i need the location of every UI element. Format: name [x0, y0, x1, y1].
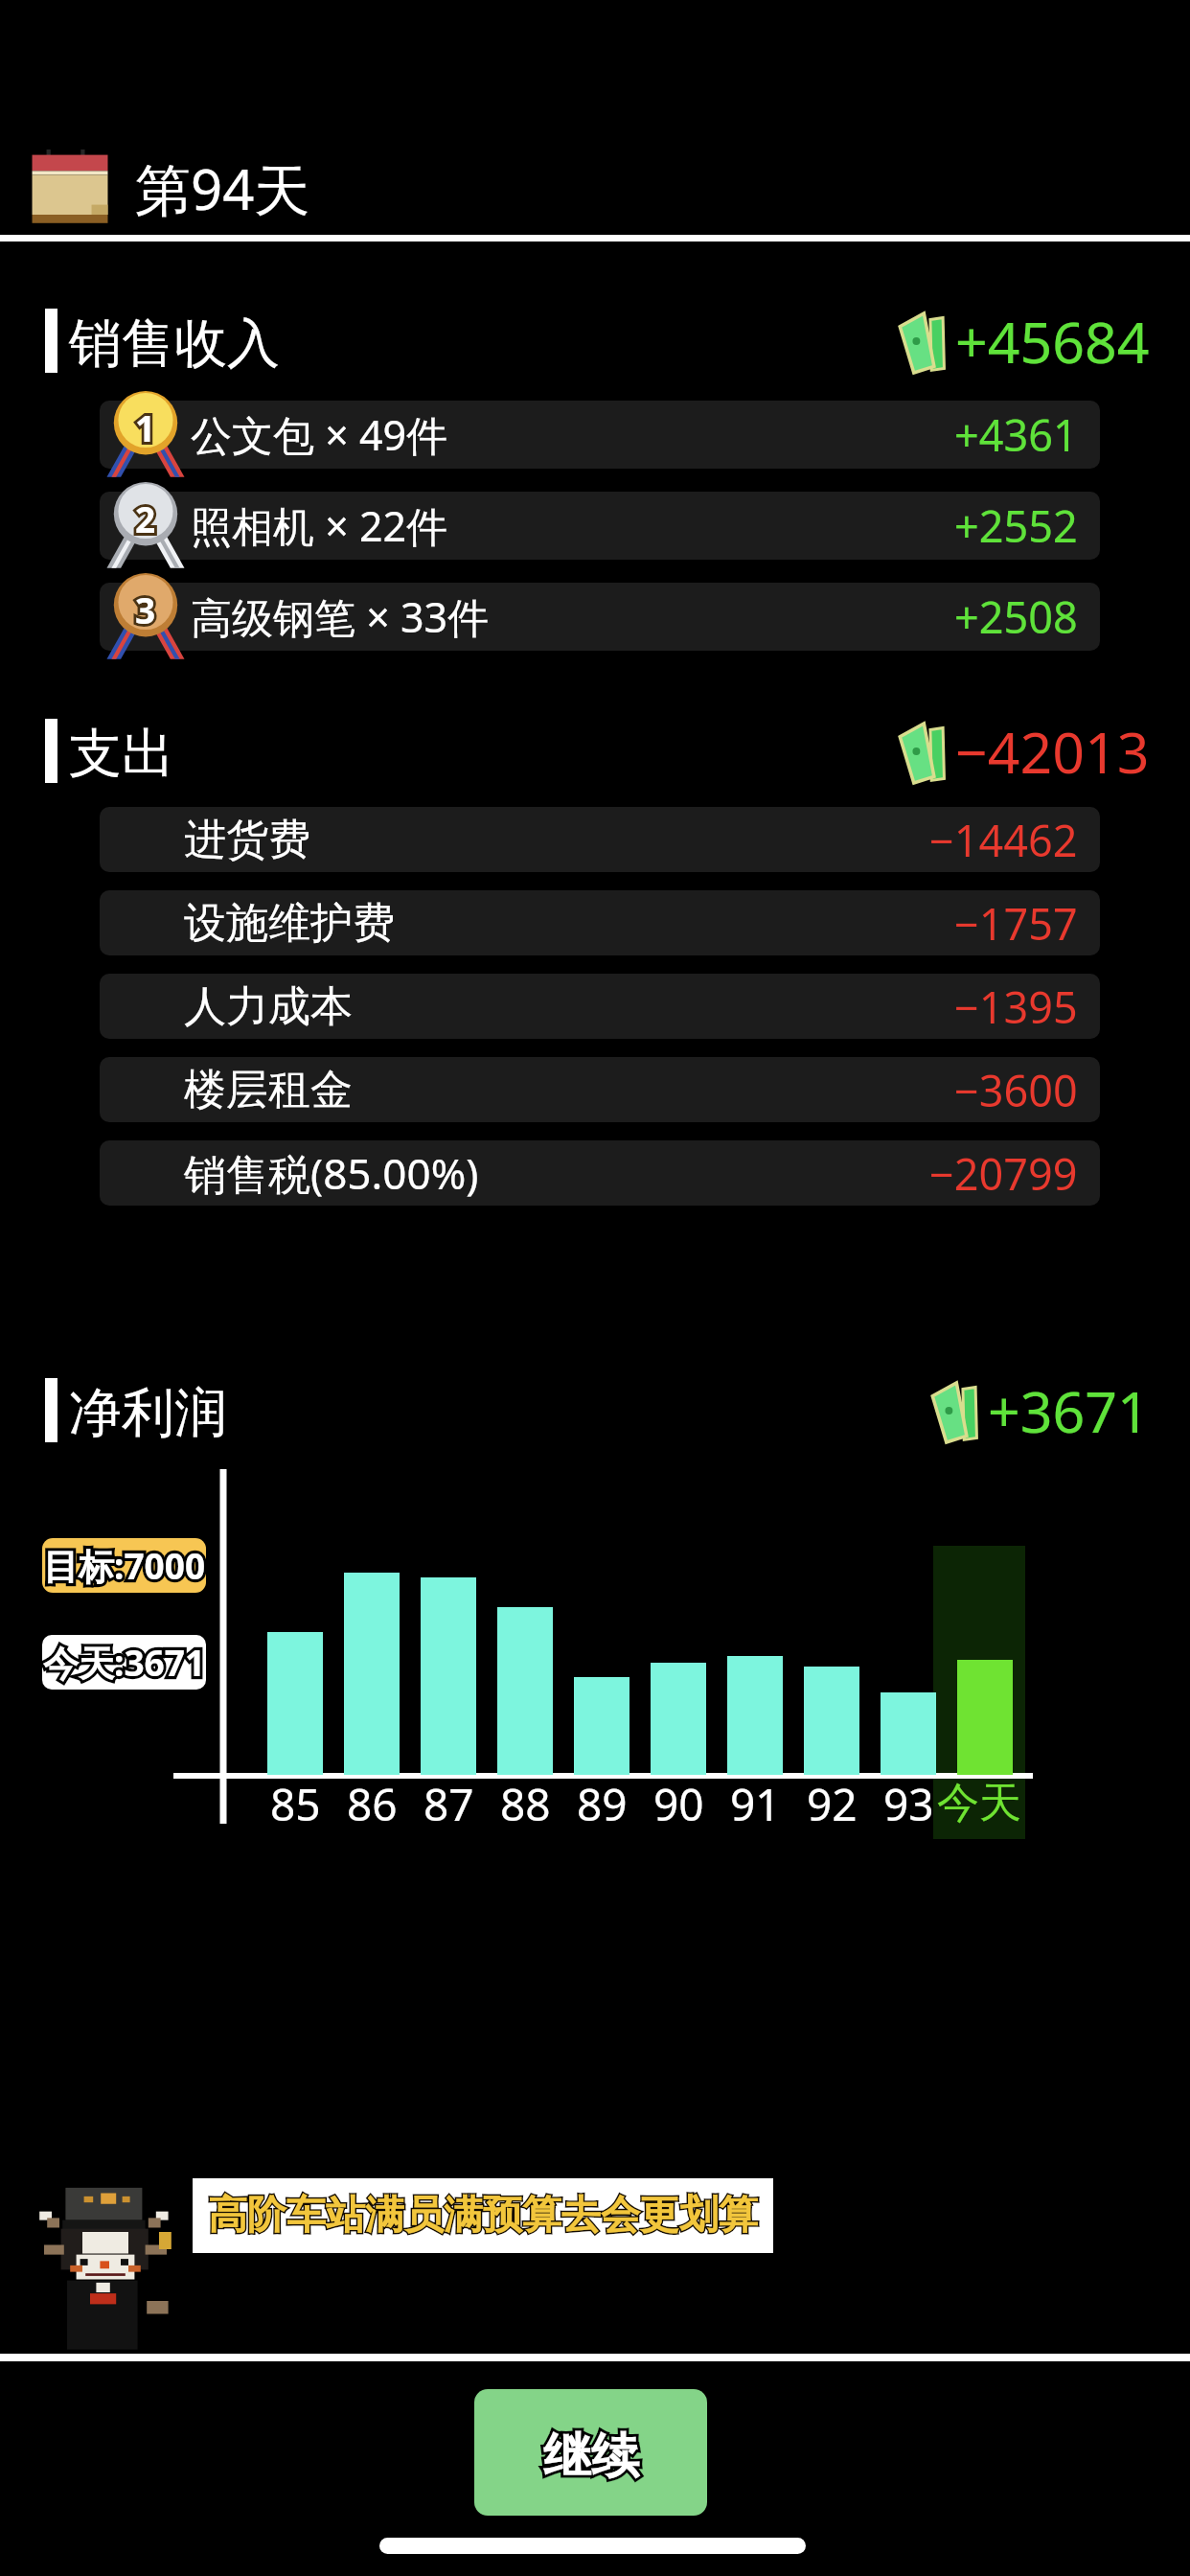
- staticText: 继续: [543, 2426, 639, 2487]
- staticText: 楼层租金: [184, 1064, 353, 1116]
- button[interactable]: 高阶车站满员满预算去会更划算: [193, 2178, 773, 2253]
- staticText: 继续: [543, 2426, 639, 2487]
- staticText: +2508: [954, 587, 1078, 646]
- button[interactable]: 设施维护费: [100, 890, 1100, 955]
- staticText: 今天: [937, 1777, 1021, 1829]
- staticText: 今天:3671: [43, 1638, 206, 1687]
- staticText: 支出: [69, 721, 174, 787]
- staticText: 2: [135, 494, 156, 542]
- staticText: −42013: [955, 713, 1150, 790]
- staticText: +45684: [955, 303, 1150, 379]
- staticText: +3671: [988, 1372, 1150, 1449]
- staticText: 销售收入: [69, 310, 280, 377]
- staticText: 87: [423, 1774, 474, 1834]
- other: Money: [924, 1379, 987, 1442]
- staticText: 销售税(85.00%): [184, 1144, 479, 1202]
- button[interactable]: 公文包 × 49件: [100, 401, 1100, 469]
- button[interactable]: 销售税(85.00%): [100, 1140, 1100, 1206]
- other: Rank 3 medal: [107, 571, 184, 662]
- staticText: 设施维护费: [184, 897, 395, 950]
- other: Mascot: [29, 2137, 182, 2353]
- staticText: 高阶车站满员满预算去会更划算: [208, 2191, 758, 2241]
- staticText: 今天:3671: [43, 1638, 206, 1687]
- staticText: 88: [500, 1774, 551, 1834]
- other: Money: [891, 310, 954, 373]
- button[interactable]: 高级钢笔 × 33件: [100, 583, 1100, 651]
- other: Rank 1 medal: [107, 389, 184, 480]
- staticText: +4361: [954, 405, 1078, 464]
- staticText: 公文包 × 49件: [191, 406, 448, 463]
- staticText: 90: [653, 1774, 704, 1834]
- staticText: 人力成本: [184, 980, 353, 1033]
- button[interactable]: Calendar: [25, 149, 310, 227]
- staticText: −1757: [954, 894, 1078, 953]
- staticText: 高级钢笔 × 33件: [191, 588, 490, 645]
- other: Money: [891, 720, 954, 783]
- button[interactable]: 照相机 × 22件: [100, 492, 1100, 560]
- button[interactable]: 继续: [474, 2389, 707, 2516]
- staticText: −14462: [929, 811, 1078, 869]
- staticText: 3: [135, 586, 156, 633]
- staticText: 92: [807, 1774, 858, 1834]
- staticText: 85: [270, 1774, 321, 1834]
- staticText: 3: [135, 586, 156, 633]
- staticText: −1395: [954, 977, 1078, 1036]
- staticText: 第94天: [135, 150, 310, 226]
- staticText: +2552: [954, 496, 1078, 555]
- button[interactable]: 人力成本: [100, 974, 1100, 1039]
- staticText: 目标:7000: [43, 1541, 206, 1590]
- staticText: 2: [135, 494, 156, 542]
- staticText: 净利润: [69, 1380, 227, 1446]
- staticText: 目标:7000: [43, 1541, 206, 1590]
- staticText: 86: [347, 1774, 398, 1834]
- staticText: 93: [883, 1774, 934, 1834]
- staticText: 高阶车站满员满预算去会更划算: [208, 2191, 758, 2241]
- staticText: −3600: [954, 1061, 1078, 1119]
- other: Rank 2 medal: [107, 480, 184, 571]
- staticText: 进货费: [184, 814, 310, 866]
- button[interactable]: 楼层租金: [100, 1057, 1100, 1122]
- other: Calendar: [25, 149, 115, 226]
- staticText: −20799: [929, 1144, 1078, 1203]
- staticText: 照相机 × 22件: [191, 497, 448, 554]
- staticText: 89: [577, 1774, 628, 1834]
- staticText: 91: [730, 1774, 781, 1834]
- staticText: 1: [135, 403, 156, 451]
- staticText: 1: [135, 403, 156, 451]
- button[interactable]: 进货费: [100, 807, 1100, 872]
